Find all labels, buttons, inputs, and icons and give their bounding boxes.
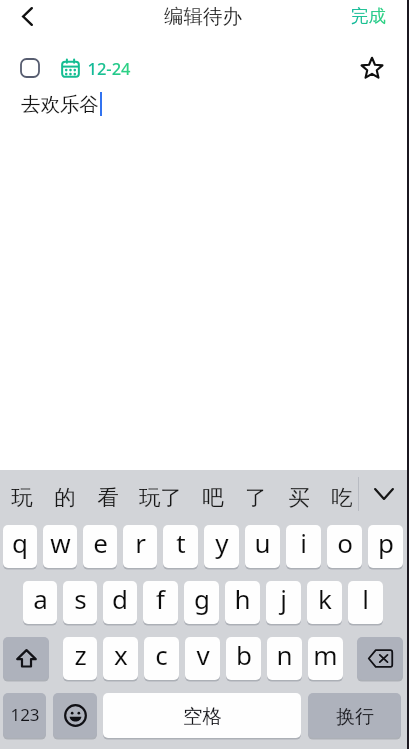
staticText: 看: [97, 484, 119, 511]
button[interactable]: x: [103, 637, 138, 680]
staticText: g: [194, 581, 210, 616]
staticText: w: [50, 525, 71, 560]
staticText: t: [176, 525, 186, 560]
button[interactable]: Mark done: [17, 55, 43, 81]
button[interactable]: p: [368, 525, 403, 568]
button[interactable]: 换行: [308, 693, 401, 738]
staticText: k: [318, 581, 332, 616]
button[interactable]: d: [103, 581, 137, 624]
button[interactable]: Backspace: [357, 637, 403, 680]
button[interactable]: n: [267, 637, 302, 680]
staticText: 12-24: [87, 57, 131, 79]
staticText: s: [74, 581, 87, 616]
button[interactable]: v: [185, 637, 220, 680]
button[interactable]: j: [266, 581, 301, 624]
staticText: f: [156, 581, 165, 616]
staticText: 换行: [336, 705, 374, 729]
button[interactable]: 看: [86, 470, 129, 525]
button[interactable]: f: [143, 581, 178, 624]
staticText: z: [74, 637, 87, 672]
button[interactable]: y: [204, 525, 239, 568]
staticText: q: [12, 525, 28, 560]
button[interactable]: b: [226, 637, 261, 680]
staticText: 吃: [331, 484, 353, 511]
staticText: d: [112, 581, 128, 616]
button[interactable]: c: [144, 637, 179, 680]
button[interactable]: l: [348, 581, 383, 624]
button[interactable]: g: [184, 581, 219, 624]
staticText: y: [215, 525, 229, 560]
staticText: v: [196, 637, 210, 672]
button[interactable]: Star: [355, 51, 389, 85]
staticText: x: [114, 637, 128, 672]
button[interactable]: 123: [3, 693, 46, 738]
staticText: h: [234, 581, 251, 616]
button[interactable]: 买: [277, 470, 320, 525]
staticText: 玩了: [139, 484, 182, 511]
staticText: c: [155, 637, 168, 672]
staticText: e: [93, 525, 108, 560]
staticText: 买: [288, 484, 310, 511]
staticText: 的: [54, 484, 76, 511]
button[interactable]: 了: [234, 470, 277, 525]
button[interactable]: 吃: [320, 470, 363, 525]
staticText: j: [280, 581, 287, 616]
staticText: 玩: [11, 484, 33, 511]
button[interactable]: h: [225, 581, 260, 624]
staticText: 完成: [351, 5, 386, 27]
button[interactable]: 完成: [335, 0, 401, 32]
staticText: 去欢乐谷: [21, 92, 99, 117]
button[interactable]: r: [123, 525, 157, 568]
button[interactable]: q: [3, 525, 37, 568]
button[interactable]: a: [23, 581, 57, 624]
button[interactable]: 空格: [103, 693, 301, 738]
staticText: a: [33, 581, 48, 616]
button[interactable]: 的: [43, 470, 86, 525]
button[interactable]: i: [286, 525, 321, 568]
staticText: 123: [10, 703, 40, 726]
staticText: r: [135, 525, 146, 560]
staticText: n: [276, 637, 293, 672]
button[interactable]: k: [307, 581, 342, 624]
button[interactable]: Hide keyboard: [359, 470, 409, 525]
staticText: 编辑待办: [164, 4, 242, 29]
button[interactable]: u: [245, 525, 280, 568]
staticText: o: [337, 525, 353, 560]
staticText: u: [254, 525, 271, 560]
staticText: 吧: [202, 484, 224, 511]
button[interactable]: o: [327, 525, 362, 568]
button[interactable]: 玩: [0, 470, 43, 525]
button[interactable]: m: [308, 637, 343, 680]
button[interactable]: s: [63, 581, 97, 624]
button[interactable]: Emoji: [53, 693, 97, 738]
button[interactable]: 玩了: [129, 470, 191, 525]
button[interactable]: Shift: [3, 637, 49, 680]
button[interactable]: Back: [2, 0, 52, 32]
staticText: m: [313, 637, 338, 672]
staticText: b: [236, 637, 252, 672]
staticText: l: [362, 581, 369, 616]
button[interactable]: w: [43, 525, 77, 568]
button[interactable]: e: [83, 525, 117, 568]
staticText: 空格: [183, 704, 222, 729]
staticText: p: [378, 525, 394, 560]
button[interactable]: z: [63, 637, 97, 680]
button[interactable]: 吧: [191, 470, 234, 525]
button[interactable]: t: [163, 525, 198, 568]
staticText: 了: [245, 484, 267, 511]
staticText: i: [300, 525, 307, 560]
button[interactable]: 12-24: [61, 53, 131, 83]
